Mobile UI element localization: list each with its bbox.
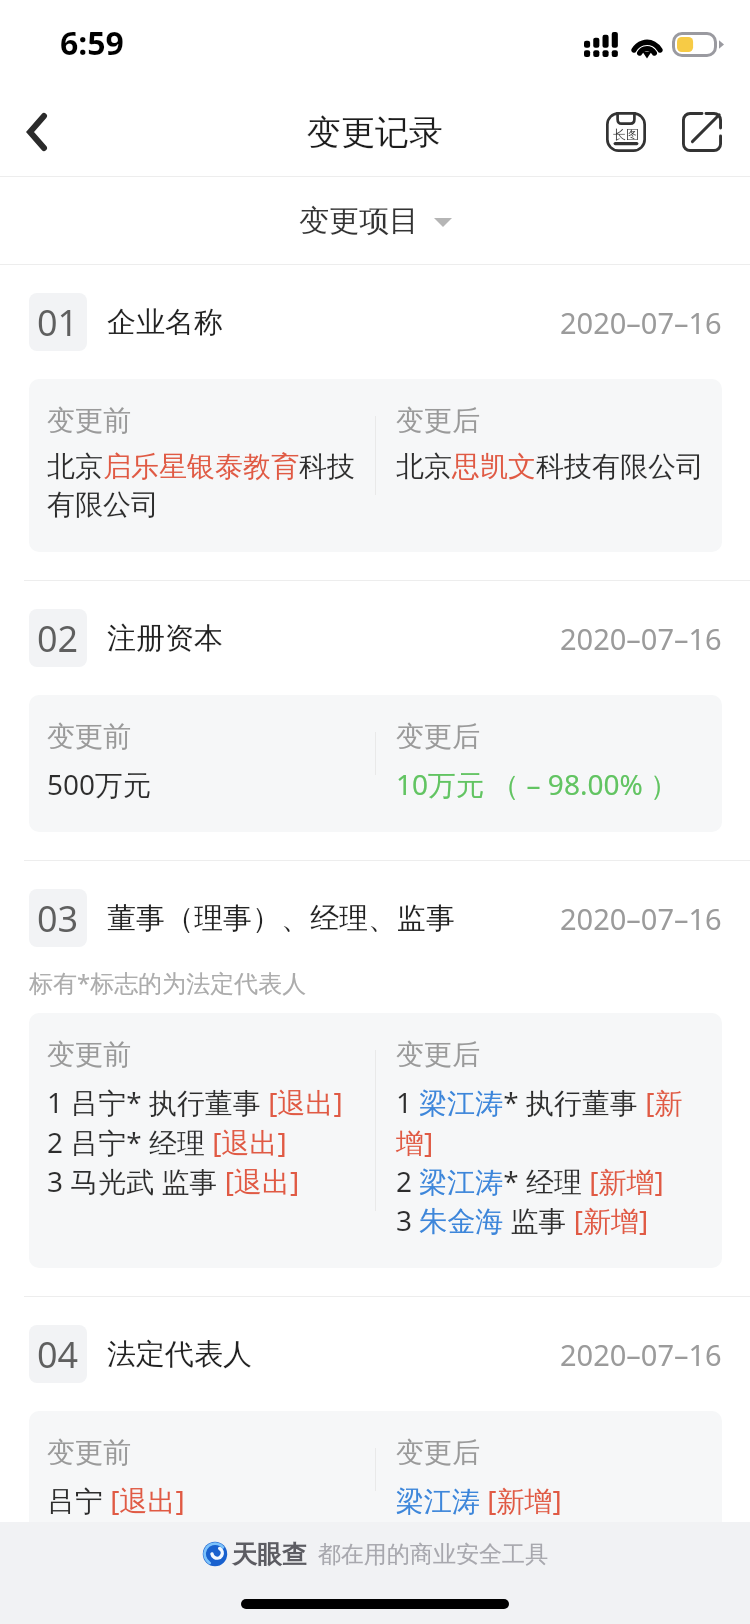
staticText: 梁江涛 [新增] <box>396 1481 562 1519</box>
staticText: 2020–07–16 <box>560 619 722 658</box>
staticText: 1 吕宁* 执行董事 [退出] 2 吕宁* 经理 [退出] 3 马光武 监事 [… <box>47 1083 343 1200</box>
staticText: 变更后 <box>396 719 480 754</box>
staticText: 变更后 <box>396 1037 480 1072</box>
staticText: 都在用的商业安全工具 <box>318 1540 548 1569</box>
button[interactable]: Long image <box>588 94 664 170</box>
staticText: 2020–07–16 <box>560 303 722 342</box>
staticText: 变更前 <box>47 719 131 754</box>
button[interactable]: 04 <box>0 1297 750 1576</box>
staticText: 变更记录 <box>307 111 443 154</box>
staticText: 03 <box>37 894 79 943</box>
staticText: 变更前 <box>47 1037 131 1072</box>
button[interactable]: 01 <box>0 265 750 580</box>
staticText: 标有*标志的为法定代表人 <box>29 966 307 999</box>
staticText: 02 <box>37 614 79 663</box>
staticText: 变更后 <box>396 1435 480 1470</box>
staticText: 2020–07–16 <box>560 1335 722 1374</box>
button[interactable]: 03 <box>0 861 750 1296</box>
button[interactable]: 变更项目 <box>283 194 468 248</box>
button[interactable]: Share <box>664 94 740 170</box>
staticText: 变更前 <box>47 403 131 438</box>
staticText: 2020–07–16 <box>560 899 722 938</box>
staticText: 变更前 <box>47 1435 131 1470</box>
staticText: 吕宁 [退出] <box>47 1481 185 1519</box>
staticText: 变更后 <box>396 403 480 438</box>
staticText: 04 <box>37 1330 79 1379</box>
staticText: 长图 <box>613 126 639 142</box>
button[interactable]: Tianyancha <box>0 1522 750 1586</box>
staticText: 企业名称 <box>107 304 223 341</box>
staticText: 北京思凯文科技有限公司 <box>396 449 704 484</box>
staticText: 天眼查 <box>232 1539 307 1570</box>
button[interactable]: 02 <box>0 581 750 860</box>
staticText: 500万元 <box>47 765 152 803</box>
staticText: 1 梁江涛* 执行董事 [新增] 2 梁江涛* 经理 [新增] 3 朱金海 监事… <box>396 1083 708 1239</box>
staticText: 董事（理事）、经理、监事 <box>107 900 455 937</box>
staticText: 注册资本 <box>107 620 223 657</box>
staticText: 01 <box>37 298 79 347</box>
staticText: 10万元 （ – 98.00% ） <box>396 765 678 803</box>
staticText: 6:59 <box>60 21 124 65</box>
staticText: 法定代表人 <box>107 1336 252 1373</box>
staticText: 北京启乐星银泰教育科技有限公司 <box>47 449 361 523</box>
button[interactable]: Back <box>0 88 88 176</box>
staticText: 变更项目 <box>299 202 419 240</box>
